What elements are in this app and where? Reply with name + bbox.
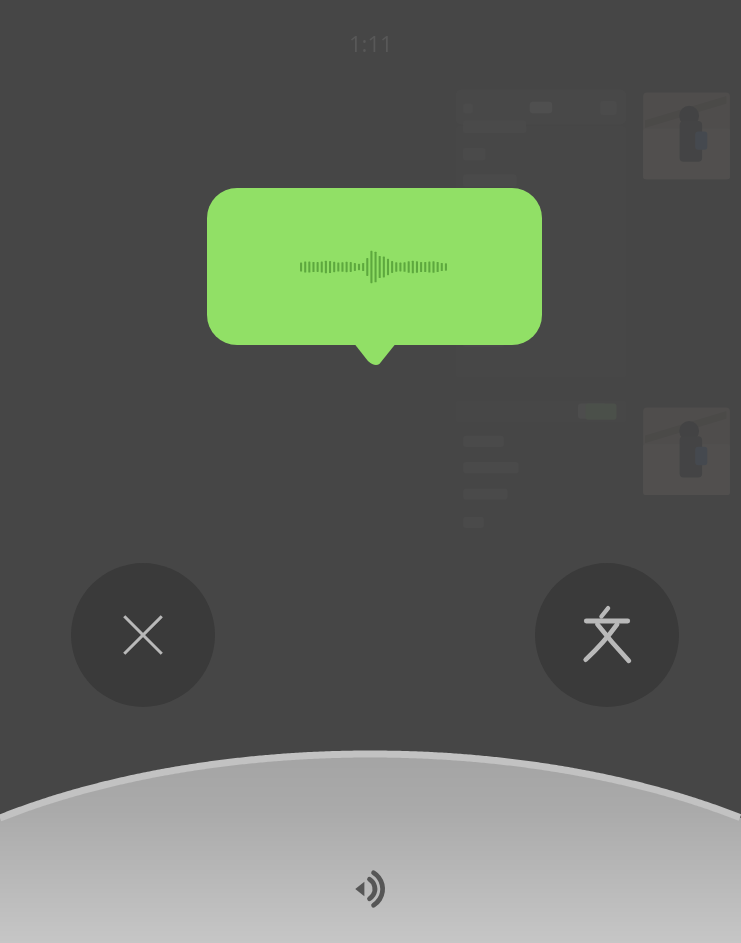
staticText: 1:11 — [349, 28, 393, 58]
button[interactable]: Listening — [340, 855, 406, 921]
button[interactable]: Switch to text input — [535, 563, 679, 707]
button[interactable]: Close — [71, 563, 215, 707]
